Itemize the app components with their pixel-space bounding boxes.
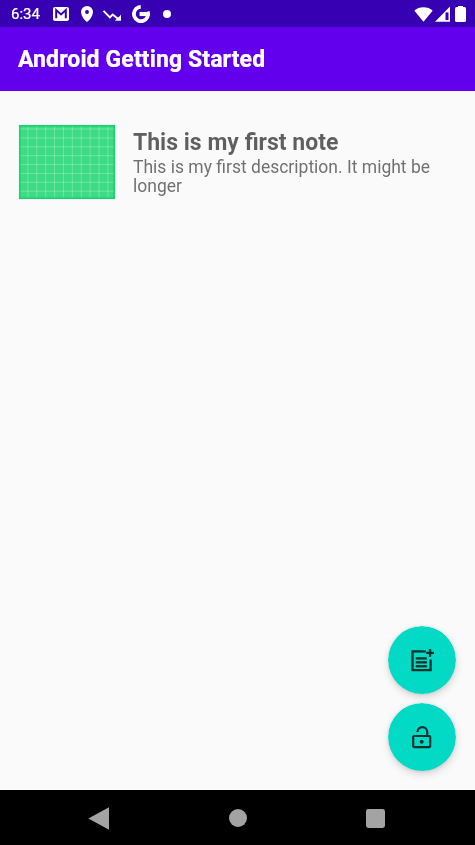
button[interactable]: Back: [73, 792, 125, 844]
button[interactable]: This is my first note: [0, 91, 475, 199]
button[interactable]: Home: [212, 792, 264, 844]
staticText: 6:34: [11, 5, 40, 23]
staticText: This is my first note: [133, 129, 339, 156]
button[interactable]: Add note: [388, 626, 456, 694]
button[interactable]: Recent apps: [349, 792, 401, 844]
button[interactable]: Unlock: [388, 703, 456, 771]
staticText: Android Getting Started: [18, 46, 266, 73]
button[interactable]: Android Getting Started: [0, 27, 475, 91]
staticText: This is my first description. It might b…: [133, 157, 461, 197]
